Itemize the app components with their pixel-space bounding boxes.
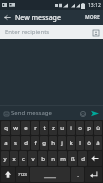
button[interactable]: s [11,136,20,150]
button[interactable]: g [40,136,48,150]
button[interactable]: Insert emoji [77,108,88,119]
button[interactable]: j [58,136,66,150]
button[interactable]: w [11,121,20,135]
button[interactable]: Enter [85,167,102,182]
staticText: q [4,124,8,132]
staticText: z [52,124,55,132]
staticText: c [22,155,25,163]
staticText: e [24,124,28,132]
button[interactable]: n [48,151,57,166]
button[interactable]: z [49,121,57,135]
staticText: Enter recipients [5,28,89,36]
button[interactable]: Backspace [88,151,102,166]
button[interactable]: o [76,121,84,135]
button[interactable]: Send [88,106,102,120]
button[interactable]: a [1,136,10,150]
button[interactable]: x [10,151,18,166]
staticText: j [61,139,63,147]
button[interactable]: ?123 [16,167,29,182]
staticText: o [78,124,82,132]
staticText: d [81,155,85,163]
staticText: f [34,139,37,147]
staticText: d [24,139,28,147]
button[interactable]: f [31,136,39,150]
button[interactable]: MORE [82,11,103,24]
button[interactable]: r [31,121,39,135]
button[interactable]: u [58,121,66,135]
staticText: n [51,155,55,163]
button[interactable]: b [38,151,47,166]
staticText: u [60,124,64,132]
button[interactable]: e [21,121,30,135]
staticText: 13:12 [88,2,101,9]
staticText: y [3,155,7,163]
button[interactable]: ä [94,136,102,150]
button[interactable]: Enter recipients [0,25,103,39]
button[interactable]: c [19,151,27,166]
staticText: t [43,124,46,132]
staticText: . [77,171,79,179]
button[interactable]: i [67,121,75,135]
staticText: a [4,139,8,147]
button[interactable]: SIM card [2,109,11,118]
staticText: x [12,155,16,163]
button[interactable]: y [1,151,9,166]
button[interactable]: d [78,151,87,166]
staticText: ü [96,124,100,132]
staticText: ä [96,139,100,147]
staticText: ß [71,155,75,163]
staticText: k [69,139,73,147]
staticText: h [51,139,55,147]
staticText: s [14,139,17,147]
button[interactable]: Space [30,167,70,182]
staticText: p [87,124,91,132]
button[interactable]: v [28,151,37,166]
staticText: MORE [85,14,100,21]
button[interactable]: k [67,136,75,150]
button[interactable]: t [40,121,48,135]
staticText: i [70,124,72,132]
button[interactable]: m [58,151,67,166]
button[interactable]: h [49,136,57,150]
staticText: g [42,139,46,147]
staticText: v [31,155,35,163]
staticText: w [13,124,18,132]
button[interactable]: l [76,136,84,150]
button[interactable]: p [85,121,93,135]
staticText: ö [87,139,91,147]
staticText: l [79,139,81,147]
staticText: New message [15,13,82,23]
staticText: ?123 [18,172,27,177]
staticText: m [60,155,66,163]
button[interactable]: . [71,167,84,182]
staticText: b [41,155,45,163]
button[interactable]: d [21,136,30,150]
button[interactable]: ß [68,151,77,166]
staticText: r [34,124,37,132]
button[interactable]: ö [85,136,93,150]
button[interactable]: q [1,121,10,135]
button[interactable]: ü [94,121,102,135]
button[interactable]: Back [0,10,15,25]
button[interactable]: Shift [1,167,15,182]
button[interactable]: Add recipient from contacts [89,26,102,39]
staticText: Send message [11,109,77,117]
